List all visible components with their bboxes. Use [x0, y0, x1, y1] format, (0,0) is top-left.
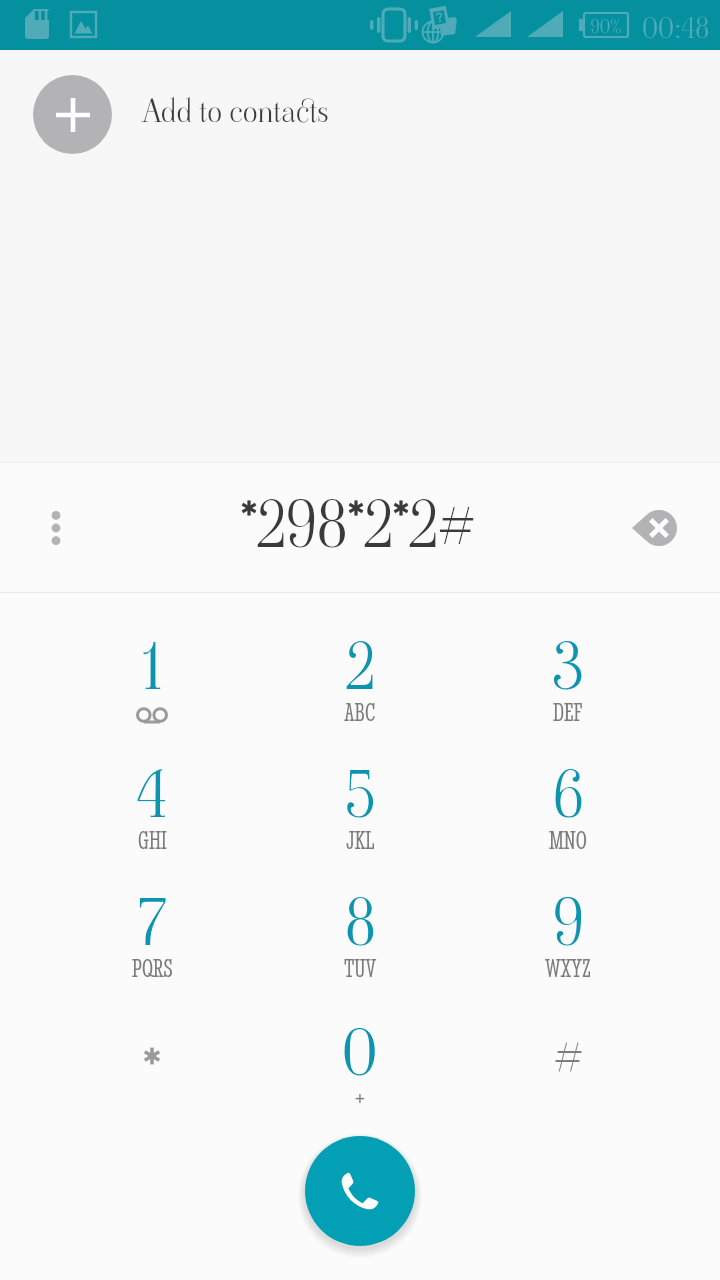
staticText: WXYZ	[545, 952, 591, 984]
staticText: JKL	[346, 824, 375, 856]
staticText: 00:48	[642, 8, 710, 49]
staticText: 90%	[584, 13, 628, 40]
button[interactable]: 0	[256, 986, 464, 1114]
staticText: MNO	[549, 824, 587, 856]
staticText: GHI	[138, 824, 167, 856]
staticText: 6	[553, 750, 584, 840]
staticText: PQRS	[132, 952, 173, 984]
staticText: +	[354, 1085, 366, 1114]
staticText: ABC	[344, 696, 376, 728]
button[interactable]: More options	[0, 463, 112, 593]
button[interactable]	[48, 986, 256, 1114]
button[interactable]: 5	[256, 728, 464, 856]
staticText: #	[554, 1021, 583, 1092]
staticText: 9	[553, 878, 584, 968]
staticText: TUV	[344, 952, 377, 984]
staticText: 4	[137, 750, 168, 840]
button[interactable]: 4	[48, 728, 256, 856]
staticText: 1	[141, 622, 163, 712]
button[interactable]: 6	[464, 728, 672, 856]
button[interactable]: 1	[48, 600, 256, 728]
staticText: 2	[364, 480, 393, 570]
staticText: 8	[345, 878, 376, 968]
staticText: 0	[342, 1008, 378, 1098]
staticText: 298	[257, 480, 348, 570]
button[interactable]: #	[464, 986, 672, 1114]
button[interactable]: 9	[464, 856, 672, 984]
button[interactable]: 8	[256, 856, 464, 984]
staticText: 2#	[409, 480, 475, 570]
button[interactable]: Backspace	[590, 463, 720, 593]
staticText: Add to contacts	[142, 89, 329, 133]
staticText: 2	[346, 622, 375, 712]
button[interactable]: 2	[256, 600, 464, 728]
button[interactable]: 3	[464, 600, 672, 728]
staticText: 7	[138, 878, 167, 968]
button[interactable]: 7	[48, 856, 256, 984]
staticText: 3	[552, 622, 584, 712]
staticText: DEF	[553, 696, 583, 728]
staticText: 5	[345, 750, 376, 840]
button[interactable]: Add to contacts	[0, 50, 720, 178]
button[interactable]: Call	[305, 1136, 415, 1246]
